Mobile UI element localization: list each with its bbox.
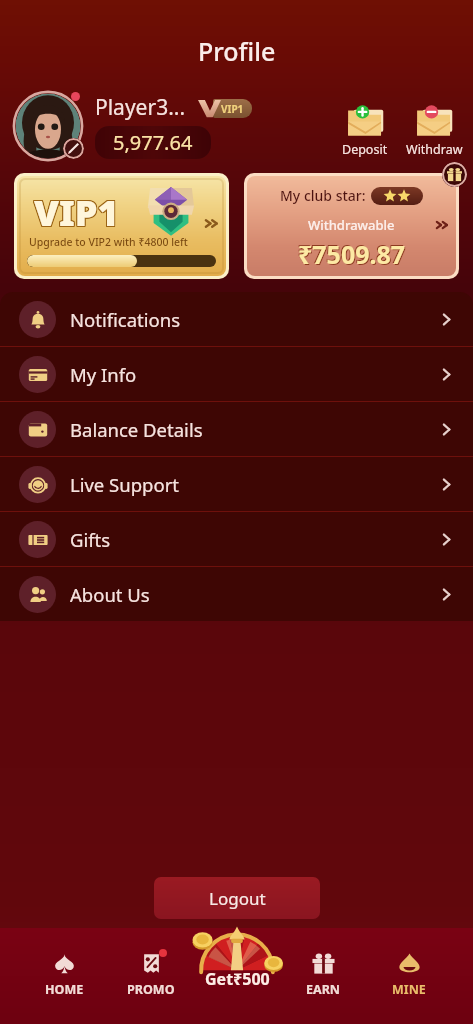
button[interactable]: Avatar — [13, 91, 83, 161]
staticText: Live Support — [70, 472, 179, 497]
staticText: Get₹500 — [205, 968, 270, 990]
staticText: MINE — [392, 981, 426, 998]
staticText: ₹7509.87 — [298, 237, 406, 271]
staticText: Profile — [198, 34, 276, 68]
button[interactable]: VIP1 — [17, 176, 226, 276]
staticText: ₹7509.87 — [299, 238, 407, 272]
staticText: Logout — [209, 887, 266, 910]
staticText: VIP1 — [34, 187, 119, 236]
staticText: Withdrawable — [308, 216, 395, 234]
staticText: VIP1 — [34, 188, 119, 237]
button[interactable]: Gift — [442, 162, 467, 187]
button[interactable]: VIP1 — [198, 96, 256, 120]
button[interactable]: My Info — [0, 347, 473, 401]
staticText: ₹7509.87 — [297, 236, 405, 270]
staticText: My club star: — [280, 186, 366, 205]
button[interactable]: Logout — [154, 877, 320, 919]
button[interactable]: My club star: — [247, 176, 456, 276]
staticText: Balance Details — [70, 417, 203, 442]
staticText: Deposit — [342, 141, 388, 158]
button[interactable]: Deposit — [342, 95, 388, 158]
staticText: Player3... — [95, 93, 186, 122]
button[interactable]: MINE — [366, 950, 452, 998]
button[interactable]: Edit avatar — [63, 138, 84, 159]
staticText: VIP1 — [33, 189, 118, 238]
button[interactable]: About Us — [0, 567, 473, 621]
staticText: EARN — [306, 981, 341, 998]
staticText: VIP1 — [221, 102, 244, 116]
staticText: HOME — [45, 981, 84, 998]
staticText: VIP1 — [33, 188, 118, 237]
button[interactable]: PROMO — [108, 950, 194, 998]
button[interactable]: 5,977.64 — [113, 129, 193, 156]
staticText: VIP1 — [33, 187, 118, 236]
button[interactable]: Gifts — [0, 512, 473, 566]
button[interactable]: Get 500 — [185, 928, 289, 994]
staticText: VIP1 — [35, 188, 120, 237]
staticText: About Us — [70, 582, 150, 607]
button[interactable]: HOME — [21, 950, 108, 998]
staticText: Notifications — [70, 307, 181, 332]
button[interactable]: Live Support — [0, 457, 473, 511]
button[interactable]: Notifications — [0, 292, 473, 346]
staticText: Withdraw — [406, 141, 463, 158]
staticText: Gifts — [70, 527, 111, 552]
button[interactable]: Balance Details — [0, 402, 473, 456]
staticText: VIP1 — [35, 189, 120, 238]
staticText: VIP1 — [35, 187, 120, 236]
staticText: VIP1 — [34, 189, 119, 238]
staticText: 5,977.64 — [113, 129, 193, 156]
staticText: Upgrade to VIP2 with ₹4800 left — [29, 235, 188, 249]
button[interactable]: EARN — [280, 950, 366, 998]
staticText: My Info — [70, 362, 137, 387]
button[interactable]: Withdraw — [406, 95, 463, 158]
staticText: PROMO — [127, 981, 175, 998]
